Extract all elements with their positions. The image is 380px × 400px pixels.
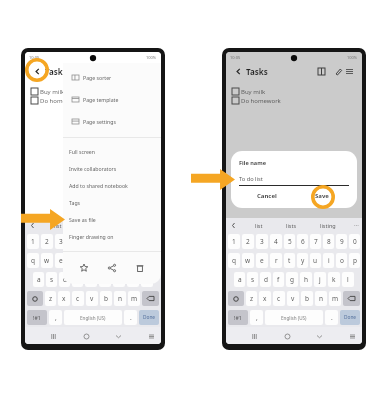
button[interactable]: Back xyxy=(313,330,325,342)
button[interactable]: Page template xyxy=(72,88,161,110)
button[interactable]: e xyxy=(256,253,268,268)
button[interactable]: Share xyxy=(105,261,119,275)
button[interactable]: Back xyxy=(233,66,244,77)
button[interactable]: n xyxy=(114,291,126,306)
button[interactable]: j xyxy=(314,272,326,287)
button[interactable]: Do homework xyxy=(31,96,161,105)
button[interactable]: g xyxy=(286,272,298,287)
button[interactable]: Favorite xyxy=(77,261,91,275)
button[interactable]: m xyxy=(128,291,140,306)
button[interactable]: Cancel xyxy=(239,187,294,205)
button[interactable]: Done xyxy=(139,310,159,325)
button[interactable]: 5 xyxy=(284,234,295,249)
button[interactable]: 7 xyxy=(310,234,321,249)
button[interactable]: Save as file xyxy=(69,211,161,228)
button[interactable]: 3 xyxy=(55,234,67,249)
button[interactable]: z xyxy=(45,291,56,306)
button[interactable]: 4 xyxy=(270,234,282,249)
button[interactable]: 2 xyxy=(242,234,254,249)
button[interactable]: Recents xyxy=(47,330,59,342)
button[interactable]: d xyxy=(59,272,70,287)
button[interactable]: Add to shared notebook xyxy=(69,177,161,194)
button[interactable]: l xyxy=(342,272,354,287)
button[interactable]: b xyxy=(100,291,112,306)
button[interactable]: Page view xyxy=(316,66,327,77)
button[interactable]: c xyxy=(72,291,84,306)
button[interactable]: Edit xyxy=(333,66,344,77)
button[interactable]: 4 xyxy=(69,234,81,249)
button[interactable]: n xyxy=(315,291,327,306)
button[interactable]: English (US) xyxy=(64,310,122,325)
button[interactable]: u xyxy=(109,253,120,268)
button[interactable]: h xyxy=(300,272,312,287)
button[interactable]: w xyxy=(242,253,254,268)
button[interactable]: o xyxy=(135,253,146,268)
button[interactable]: !#1 xyxy=(228,310,248,325)
button[interactable]: 2 xyxy=(41,234,53,249)
button[interactable]: a xyxy=(33,272,44,287)
button[interactable]: Tags xyxy=(69,194,161,211)
button[interactable]: t xyxy=(284,253,295,268)
button[interactable]: 1 xyxy=(27,234,39,249)
button[interactable]: m xyxy=(329,291,341,306)
button[interactable]: q xyxy=(228,253,240,268)
button[interactable]: Buy milk xyxy=(31,87,161,96)
button[interactable]: 8 xyxy=(323,234,334,249)
button[interactable]: Full screen xyxy=(69,143,161,160)
button[interactable]: s xyxy=(46,272,57,287)
button[interactable]: a xyxy=(234,272,245,287)
button[interactable]: Shift xyxy=(228,291,244,306)
button[interactable]: . xyxy=(124,310,137,325)
button[interactable]: Backspace xyxy=(142,291,159,306)
button[interactable]: Menu xyxy=(346,330,358,342)
button[interactable]: Previous xyxy=(28,221,36,229)
button[interactable]: r xyxy=(270,253,282,268)
button[interactable]: Back xyxy=(112,330,124,342)
button[interactable]: Do homework xyxy=(232,96,362,105)
button[interactable]: i xyxy=(323,253,334,268)
button[interactable]: 9 xyxy=(336,234,347,249)
button[interactable]: Recents xyxy=(248,330,260,342)
button[interactable]: 6 xyxy=(96,234,107,249)
button[interactable]: w xyxy=(41,253,53,268)
button[interactable]: 0 xyxy=(349,234,360,249)
button[interactable]: Save xyxy=(294,187,349,205)
button[interactable]: v xyxy=(86,291,98,306)
button[interactable]: 3 xyxy=(256,234,268,249)
button[interactable]: 1 xyxy=(228,234,240,249)
button[interactable]: Page sorter xyxy=(72,66,161,88)
button[interactable]: Done xyxy=(340,310,360,325)
button[interactable]: Menu xyxy=(145,330,157,342)
button[interactable]: 6 xyxy=(297,234,308,249)
button[interactable]: Delete xyxy=(133,261,147,275)
button[interactable]: b xyxy=(301,291,313,306)
button[interactable]: c xyxy=(273,291,285,306)
button[interactable]: f xyxy=(273,272,284,287)
button[interactable]: r xyxy=(69,253,81,268)
button[interactable]: u xyxy=(310,253,321,268)
button[interactable]: v xyxy=(287,291,299,306)
button[interactable]: Home xyxy=(281,330,293,342)
button[interactable]: z xyxy=(246,291,257,306)
button[interactable]: Previous xyxy=(229,221,237,229)
button[interactable]: More options xyxy=(344,66,355,77)
button[interactable]: Shift xyxy=(27,291,43,306)
button[interactable]: k xyxy=(328,272,340,287)
button[interactable]: x xyxy=(58,291,70,306)
button[interactable]: Finger drawing on xyxy=(69,228,161,245)
button[interactable]: Home xyxy=(80,330,92,342)
button[interactable]: y xyxy=(297,253,308,268)
button[interactable]: , xyxy=(250,310,263,325)
button[interactable]: o xyxy=(336,253,347,268)
button[interactable]: e xyxy=(55,253,67,268)
button[interactable]: p xyxy=(349,253,360,268)
